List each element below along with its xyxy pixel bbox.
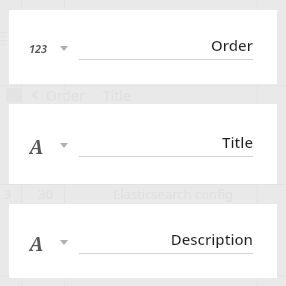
staticText: Title: [103, 86, 131, 105]
button[interactable]: Field type: [9, 104, 277, 184]
staticText: Order: [46, 86, 85, 105]
button[interactable]: Change type: [57, 41, 71, 55]
staticText: Title: [79, 132, 253, 152]
button[interactable]: Change type: [57, 138, 71, 152]
button[interactable]: Field type: [29, 231, 55, 253]
button[interactable]: Field type: [9, 204, 277, 278]
staticText: Description: [79, 229, 253, 249]
staticText: 123: [29, 41, 48, 56]
button[interactable]: Change type: [57, 235, 71, 249]
button[interactable]: Field type: [29, 37, 55, 59]
button[interactable]: Field type: [9, 10, 277, 84]
staticText: A: [29, 134, 44, 156]
staticText: Order: [79, 35, 253, 55]
staticText: A: [29, 231, 44, 253]
button[interactable]: Field type: [29, 134, 55, 156]
